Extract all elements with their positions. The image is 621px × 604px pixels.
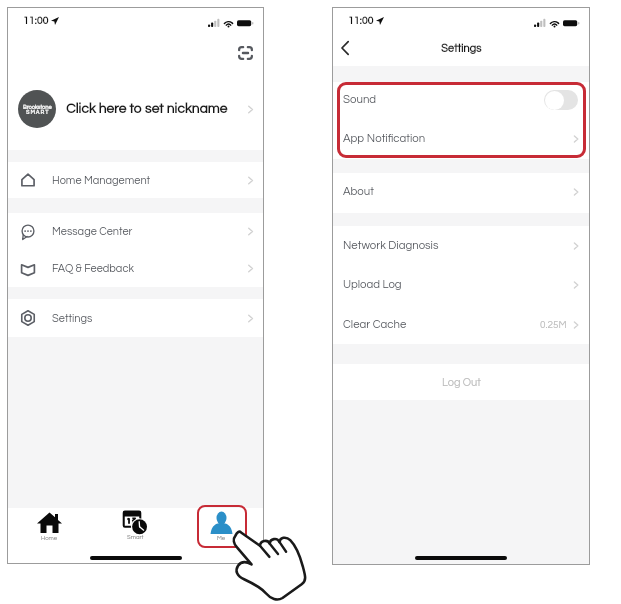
button[interactable]: App Notification (332, 118, 590, 159)
staticText: Network Diagnosis (343, 240, 439, 252)
staticText: About (343, 186, 374, 198)
button[interactable]: Sound toggle off (544, 90, 578, 110)
button[interactable]: Home Management (7, 162, 264, 198)
button[interactable]: Settings (7, 299, 264, 337)
staticText: Sound (343, 94, 377, 106)
staticText: 11:00 (348, 15, 374, 26)
button[interactable]: Back (333, 36, 357, 60)
button[interactable]: Message Center (7, 213, 264, 250)
button[interactable]: Me (178, 508, 264, 551)
button[interactable]: FAQ & Feedback (7, 250, 264, 287)
button[interactable]: Smart (92, 508, 178, 551)
button[interactable]: About (332, 173, 590, 210)
staticText: FAQ & Feedback (52, 263, 134, 274)
button[interactable]: Clear Cache (332, 305, 590, 344)
button[interactable]: Brookstone (7, 81, 264, 137)
staticText: Click here to set nickname (66, 102, 228, 116)
staticText: Home (41, 535, 58, 541)
staticText: Clear Cache (343, 319, 407, 331)
staticText: Log Out (442, 377, 481, 388)
button[interactable]: Sound (332, 82, 590, 118)
button[interactable]: Log Out (332, 364, 590, 400)
staticText: Home Management (52, 175, 151, 186)
button[interactable]: Scan QR code (232, 40, 258, 66)
staticText: Upload Log (343, 279, 402, 291)
staticText: App Notification (343, 133, 426, 145)
staticText: Settings (52, 313, 93, 324)
staticText: Smart (127, 534, 144, 540)
staticText: SMART (26, 110, 50, 116)
button[interactable]: Upload Log (332, 265, 590, 305)
button[interactable]: Home (7, 508, 92, 551)
staticText: 11:00 (23, 15, 49, 26)
staticText: Settings (441, 43, 482, 54)
staticText: Message Center (52, 226, 133, 237)
staticText: Me (217, 535, 226, 541)
staticText: Brookstone (23, 104, 52, 110)
staticText: 0.25M (540, 320, 567, 330)
button[interactable]: Network Diagnosis (332, 226, 590, 265)
